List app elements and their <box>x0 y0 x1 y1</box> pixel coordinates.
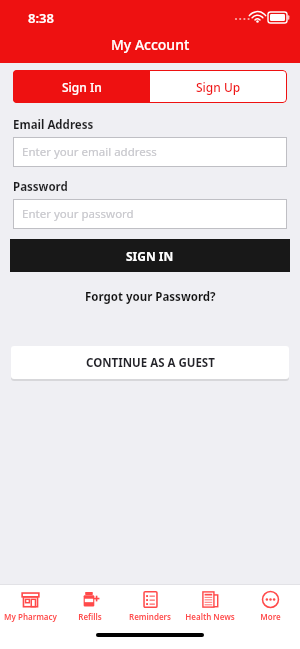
staticText: Forgot your Password? <box>85 289 216 305</box>
staticText: Enter your password <box>22 206 134 222</box>
button[interactable]: Health News <box>180 585 240 627</box>
button[interactable]: CONTINUE AS A GUEST <box>11 346 289 379</box>
button[interactable]: Sign In <box>13 70 150 103</box>
staticText: Sign Up <box>196 79 241 95</box>
staticText: My Account <box>111 35 190 54</box>
staticText: SIGN IN <box>126 248 174 264</box>
button[interactable]: SIGN IN <box>10 239 290 272</box>
button[interactable]: Enter your password <box>13 199 287 229</box>
staticText: CONTINUE AS A GUEST <box>86 355 215 371</box>
button[interactable]: Refills <box>60 585 120 627</box>
button[interactable]: More <box>240 585 300 627</box>
button[interactable]: Reminders <box>120 585 180 627</box>
staticText: Health News <box>185 611 235 622</box>
staticText: Email Address <box>13 117 94 133</box>
staticText: Reminders <box>129 611 171 622</box>
staticText: More <box>260 611 281 622</box>
staticText: Refills <box>78 611 102 622</box>
button[interactable]: Enter your email address <box>13 137 287 167</box>
staticText: Enter your email address <box>22 144 157 160</box>
button[interactable]: Sign Up <box>150 70 287 103</box>
button[interactable]: Forgot your Password? <box>79 287 222 307</box>
staticText: Sign In <box>62 79 102 95</box>
staticText: 8:38 <box>28 9 54 27</box>
staticText: My Pharmacy <box>4 611 57 622</box>
button[interactable]: My Pharmacy <box>0 585 60 627</box>
staticText: Password <box>13 179 68 195</box>
